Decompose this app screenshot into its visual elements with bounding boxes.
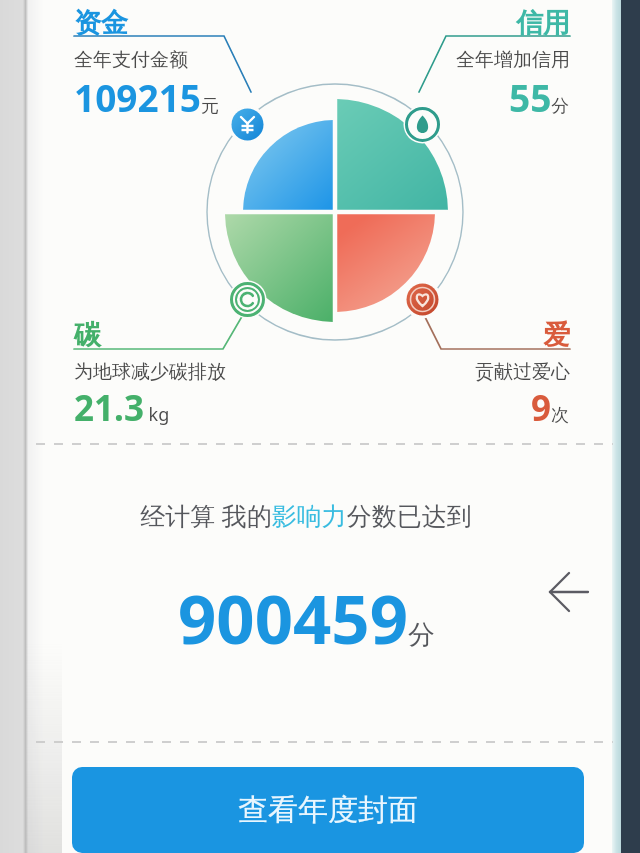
- staticText: 贡献过爱心: [475, 360, 570, 384]
- staticText: 碳: [74, 318, 101, 352]
- staticText: 全年增加信用: [456, 48, 570, 72]
- staticText: 爱: [543, 318, 570, 352]
- staticText: 21.3 kg: [74, 384, 170, 432]
- staticText: 经计算 我的影响力分数已达到: [140, 498, 472, 532]
- button[interactable]: 查看年度封面: [72, 767, 584, 853]
- staticText: 查看年度封面: [238, 791, 418, 829]
- staticText: 55分: [509, 72, 570, 122]
- staticText: 9次: [531, 384, 570, 432]
- staticText: 资金: [74, 6, 128, 40]
- staticText: 为地球减少碳排放: [74, 360, 226, 384]
- staticText: 信用: [516, 6, 570, 40]
- staticText: 109215元: [74, 72, 219, 122]
- staticText: 全年支付金额: [74, 48, 188, 72]
- button[interactable]: 返回: [540, 562, 602, 624]
- staticText: 900459分: [178, 572, 435, 663]
